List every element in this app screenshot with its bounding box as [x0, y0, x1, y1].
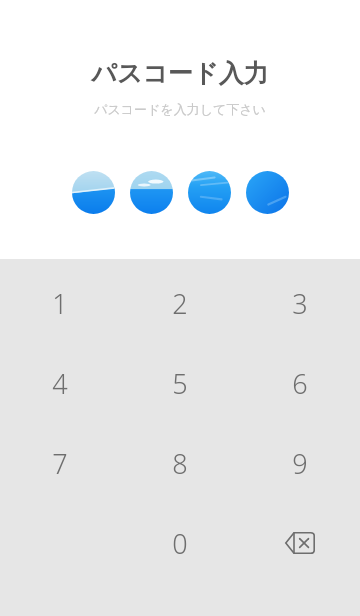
button[interactable]: 8 [120, 443, 240, 483]
button[interactable]: 5 [120, 363, 240, 403]
staticText: 9 [292, 445, 308, 482]
staticText: 7 [52, 445, 68, 482]
staticText: 1 [52, 285, 68, 322]
button[interactable]: 7 [0, 443, 120, 483]
staticText: 0 [172, 525, 188, 562]
staticText: 3 [292, 285, 308, 322]
staticText: 8 [172, 445, 188, 482]
staticText: 4 [52, 365, 68, 402]
button[interactable]: 0 [120, 523, 240, 563]
staticText: 5 [172, 365, 188, 402]
button[interactable]: 4 [0, 363, 120, 403]
button[interactable]: Backspace [240, 523, 360, 563]
button[interactable]: 9 [240, 443, 360, 483]
staticText: パスコード入力 [91, 58, 269, 89]
button[interactable]: 3 [240, 283, 360, 323]
button[interactable]: 2 [120, 283, 240, 323]
staticText: 6 [292, 365, 308, 402]
staticText: パスコードを入力して下さい [94, 101, 266, 117]
button[interactable]: 1 [0, 283, 120, 323]
button[interactable]: 6 [240, 363, 360, 403]
staticText: 2 [172, 285, 188, 322]
